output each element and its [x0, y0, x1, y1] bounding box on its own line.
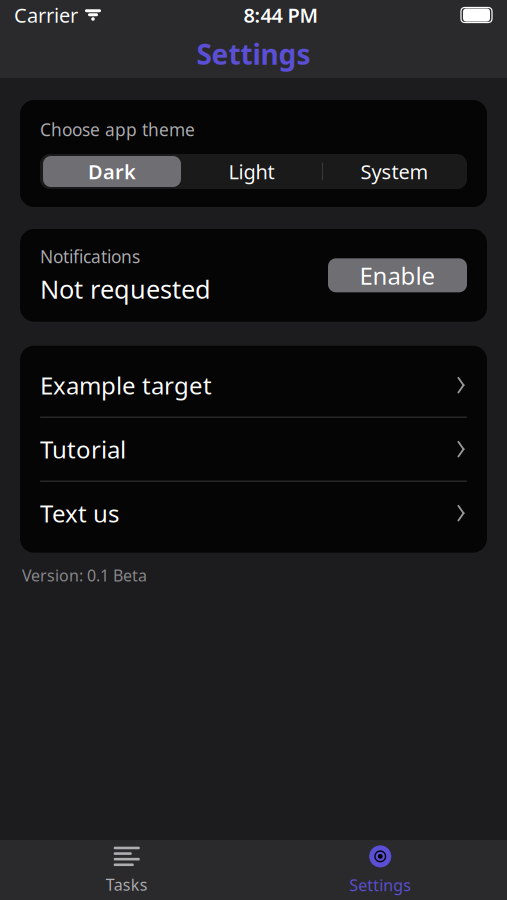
staticText: Version: 0.1 Beta — [22, 565, 147, 586]
staticText: Enable — [359, 259, 435, 291]
staticText: System — [360, 158, 428, 185]
button[interactable]: Enable — [328, 258, 467, 292]
staticText: Carrier — [14, 2, 78, 28]
staticText: Settings — [196, 35, 310, 73]
staticText: Text us — [40, 497, 119, 529]
button[interactable]: Dark — [43, 156, 181, 187]
staticText: Tutorial — [40, 433, 126, 465]
staticText: Example target — [40, 369, 212, 401]
button[interactable]: Light — [181, 154, 323, 189]
button[interactable]: Tasks — [0, 840, 253, 900]
button[interactable]: Settings — [253, 840, 507, 900]
staticText: Dark — [88, 158, 136, 185]
staticText: Settings — [349, 874, 411, 896]
staticText: 8:44 PM — [243, 2, 318, 28]
staticText: Choose app theme — [40, 118, 195, 141]
button[interactable]: Tutorial — [20, 418, 487, 481]
button[interactable]: Text us — [20, 482, 487, 545]
button[interactable]: System — [323, 154, 466, 189]
staticText: Not requested — [40, 272, 211, 306]
staticText: Light — [228, 158, 274, 185]
staticText: Tasks — [106, 874, 148, 895]
staticText: Notifications — [40, 245, 140, 268]
button[interactable]: Example target — [20, 354, 487, 417]
